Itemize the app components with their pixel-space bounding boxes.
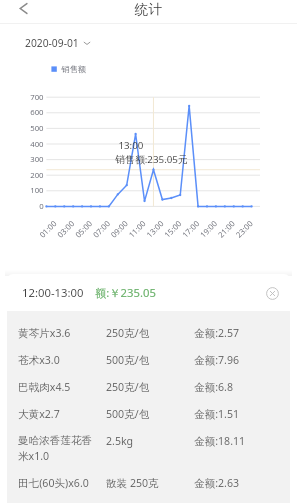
staticText: 500克/包 [106,352,150,368]
button[interactable]: 苍术x3.0 [7,352,290,368]
staticText: 12:00-13:00 [22,285,84,300]
button[interactable]: 巴戟肉x4.5 [7,379,290,395]
staticText: 金额:18.11 [194,433,246,449]
staticText: 金额:6.8 [194,379,233,395]
button[interactable]: 黄芩片x3.6 [7,325,290,341]
staticText: 苍术x3.0 [18,352,60,368]
button[interactable]: 12:00-13:00 [7,274,290,311]
staticText: 黄芩片x3.6 [18,325,71,341]
button[interactable]: Back [14,0,33,18]
staticText: 统计 [135,1,162,18]
staticText: 田七(60头)x6.0 [18,475,89,491]
button[interactable]: 田七(60头)x6.0 [7,475,290,491]
staticText: 金额:2.57 [194,325,240,341]
staticText: 金额:1.51 [194,406,240,422]
staticText: 巴戟肉x4.5 [18,379,71,395]
staticText: 250克/包 [106,325,150,341]
staticText: 2020-09-01 [25,36,79,50]
staticText: 500克/包 [106,406,150,422]
staticText: 2.5kg [106,433,134,448]
button[interactable]: Close [262,283,282,303]
button[interactable]: 曼哈浓香莲花香米x1.0 [7,433,290,464]
button[interactable]: 大黄x2.7 [7,406,290,422]
button[interactable]: 2020-09-01 [25,36,91,50]
staticText: 额:￥235.05 [95,285,156,300]
staticText: 金额:7.96 [194,352,240,368]
staticText: 大黄x2.7 [18,406,60,422]
staticText: 250克/包 [106,379,150,395]
staticText: 散装 250克 [106,475,159,491]
staticText: 曼哈浓香莲花香米x1.0 [18,433,95,464]
staticText: 金额:2.63 [194,475,240,491]
